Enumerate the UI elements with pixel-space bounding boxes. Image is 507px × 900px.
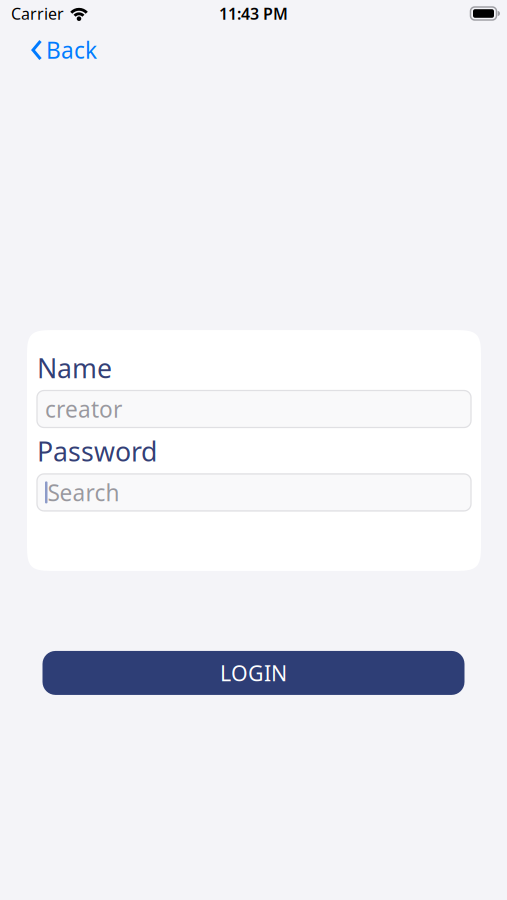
button[interactable]: LOGIN [42, 651, 464, 695]
button[interactable]: Name text field [37, 390, 471, 427]
button[interactable]: Back [31, 35, 97, 65]
staticText: Search [47, 477, 119, 507]
staticText: Password [37, 433, 157, 469]
staticText: Carrier [11, 3, 64, 24]
staticText: 11:43 PM [219, 3, 288, 24]
staticText: Name [37, 350, 112, 385]
staticText: LOGIN [220, 659, 287, 687]
button[interactable]: Password text field [37, 474, 471, 511]
staticText: creator [45, 394, 122, 424]
staticText: Back [46, 35, 97, 65]
